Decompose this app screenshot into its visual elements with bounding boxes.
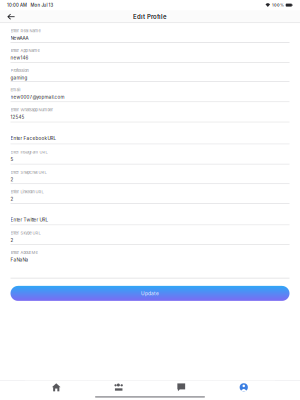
staticText: Enter About Me [10,250,37,255]
staticText: new146 [10,55,28,61]
staticText: 100% [272,3,284,7]
staticText: NewAAA [10,35,28,41]
staticText: gaming [10,75,27,81]
button[interactable]: Profile [212,381,275,394]
button[interactable]: People [87,381,150,394]
staticText: new0007@yopmail.com [10,94,64,100]
staticText: Enter LinkedIn URL [10,189,43,194]
staticText: Edit Profile [133,13,167,20]
staticText: 12545 [10,114,24,120]
button[interactable]: Home [25,381,87,394]
button[interactable]: Update [10,286,289,301]
staticText: 10:00 AM [7,2,27,8]
staticText: 5 [10,157,13,162]
staticText: 2 [10,238,13,243]
staticText: Enter Instagram URL [10,150,47,154]
staticText: Enter Facebook URL [10,136,56,141]
staticText: Enter Real Name [10,28,40,33]
button[interactable]: Chat [150,381,212,394]
staticText: 2 [10,196,13,202]
staticText: Enter Skype URL [10,231,40,235]
staticText: Enter SnapChat URL [10,170,46,175]
staticText: Profession [10,68,28,73]
staticText: Enter Twitter URL [10,217,48,223]
staticText: Enter Whatsapp Number [10,107,53,112]
staticText: Update [141,290,159,296]
button[interactable]: Back [3,11,19,22]
staticText: 2 [10,177,13,182]
staticText: Enter App Name [10,48,39,53]
staticText: Mon Jul 13 [30,2,53,8]
staticText: FaNaNa [10,257,28,263]
staticText: Email [10,87,20,92]
